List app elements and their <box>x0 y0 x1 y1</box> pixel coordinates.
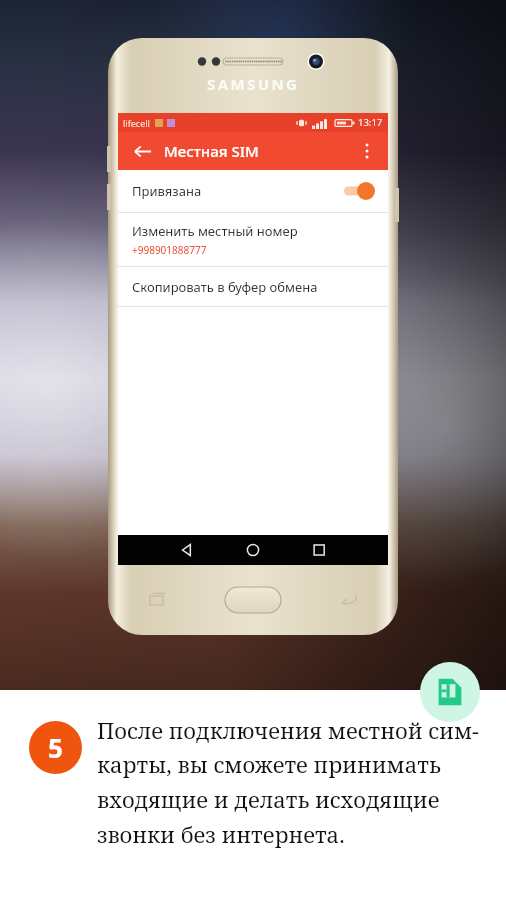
staticText: Привязана <box>132 182 202 200</box>
button[interactable]: SIM card <box>420 662 480 722</box>
staticText: 13:17 <box>358 116 383 129</box>
button[interactable]: More options <box>350 134 384 168</box>
staticText: Местная SIM <box>164 141 259 161</box>
button[interactable]: Привязана <box>118 170 388 212</box>
staticText: lifecell <box>123 117 150 129</box>
button[interactable]: Изменить местный номер <box>118 213 388 266</box>
staticText: После подключения местной сим-карты, вы … <box>97 715 479 850</box>
staticText: SAMSUNG <box>207 74 300 94</box>
staticText: Скопировать в буфер обмена <box>132 278 318 296</box>
button[interactable]: Скопировать в буфер обмена <box>118 267 388 306</box>
button[interactable]: Back <box>124 133 160 169</box>
staticText: 5 <box>48 730 63 765</box>
staticText: +998901888777 <box>132 243 207 257</box>
staticText: Изменить местный номер <box>132 222 298 240</box>
